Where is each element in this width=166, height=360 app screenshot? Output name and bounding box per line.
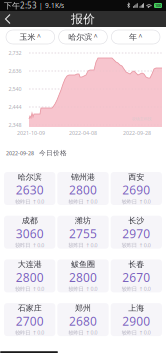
staticText: 2700 bbox=[16, 313, 44, 329]
staticText: 3060 bbox=[16, 226, 44, 241]
button[interactable]: 年 bbox=[111, 30, 160, 44]
button[interactable]: 石家庄 bbox=[4, 303, 55, 336]
staticText: 2022-09-28 bbox=[123, 129, 151, 137]
staticText: 西安 bbox=[128, 172, 144, 182]
staticText: 长沙 bbox=[128, 216, 144, 226]
staticText: 哈尔滨 bbox=[18, 172, 42, 182]
staticText: 2,348 bbox=[8, 121, 21, 129]
staticText: 长春 bbox=[128, 259, 144, 269]
staticText: 2970 bbox=[122, 226, 150, 241]
staticText: 较昨日 ↑ 0.0 bbox=[122, 329, 151, 336]
staticText: 较昨日 ↑ 0.0 bbox=[15, 329, 44, 336]
button[interactable]: 鲅鱼圈 bbox=[57, 259, 109, 292]
staticText: ^ bbox=[138, 33, 142, 41]
staticText: 2800 bbox=[69, 182, 97, 198]
staticText: 2022-04-08 bbox=[69, 129, 97, 137]
staticText: 下午2:53 bbox=[4, 0, 37, 11]
staticText: 2800 bbox=[16, 269, 44, 285]
button[interactable]: 长沙 bbox=[111, 216, 162, 249]
button[interactable]: 哈尔滨 bbox=[4, 172, 55, 205]
staticText: 较昨日 ↑ 0.0 bbox=[122, 198, 151, 205]
button[interactable]: 西安 bbox=[111, 172, 162, 205]
button[interactable]: 大连港 bbox=[4, 259, 55, 292]
staticText: 2755 bbox=[69, 226, 97, 241]
staticText: 2800 bbox=[69, 269, 97, 285]
button[interactable]: 锦州港 bbox=[57, 172, 109, 205]
staticText: 2680 bbox=[69, 313, 97, 329]
staticText: 报价 bbox=[71, 12, 95, 26]
staticText: 年 bbox=[129, 32, 137, 42]
staticText: 较昨日 ↑ 0.0 bbox=[68, 329, 97, 336]
staticText: ^ bbox=[37, 33, 41, 41]
staticText: 2,540 bbox=[8, 85, 21, 93]
staticText: 大连港 bbox=[18, 259, 42, 269]
staticText: 2,636 bbox=[8, 67, 21, 75]
button[interactable]: 长春 bbox=[111, 259, 162, 292]
button[interactable]: 郑州 bbox=[57, 303, 109, 336]
staticText: 较昨日 ↑ 0.0 bbox=[15, 285, 44, 292]
staticText: 2900 bbox=[122, 313, 150, 329]
staticText: 潍坊 bbox=[75, 216, 91, 226]
button[interactable]: 哈尔滨 bbox=[59, 30, 107, 44]
staticText: 2690 bbox=[122, 182, 150, 198]
staticText: 较昨日 ↑ 0.0 bbox=[15, 198, 44, 205]
staticText: 今日价格 bbox=[39, 149, 67, 157]
staticText: 较昨日 ↑ 0.0 bbox=[122, 241, 151, 249]
staticText: 2022-09-28 bbox=[6, 150, 34, 157]
staticText: 较昨日 ↑ 0.0 bbox=[122, 285, 151, 292]
staticText: 石家庄 bbox=[18, 303, 42, 313]
staticText: 2,732 bbox=[8, 49, 21, 57]
staticText: 上海 bbox=[128, 303, 144, 313]
staticText: 哈尔滨 bbox=[68, 32, 92, 42]
button[interactable]: 玉米 bbox=[6, 30, 55, 44]
staticText: 较昨日 ↑ 0.0 bbox=[15, 241, 44, 249]
button[interactable]: 上海 bbox=[111, 303, 162, 336]
staticText: 较昨日 ↑ 0.0 bbox=[68, 241, 97, 249]
staticText: 2021-10-09 bbox=[17, 129, 45, 137]
staticText: 较昨日 ↑ 0.0 bbox=[68, 198, 97, 205]
staticText: 成都 bbox=[22, 216, 38, 226]
staticText: 较昨日 ↑ 0.0 bbox=[68, 285, 97, 292]
staticText: 2,444 bbox=[8, 103, 21, 111]
staticText: ^ bbox=[94, 33, 98, 41]
button[interactable]: Back bbox=[0, 11, 22, 27]
staticText: 2670 bbox=[122, 269, 150, 285]
staticText: 100 bbox=[155, 3, 161, 8]
staticText: 2630 bbox=[16, 182, 44, 198]
staticText: 农场主科技 bbox=[132, 116, 152, 121]
staticText: | 9.1K/s bbox=[37, 1, 64, 10]
staticText: 郑州 bbox=[75, 303, 91, 313]
staticText: 玉米 bbox=[20, 32, 36, 42]
staticText: 锦州港 bbox=[71, 172, 95, 182]
button[interactable]: 成都 bbox=[4, 216, 55, 249]
button[interactable]: 潍坊 bbox=[57, 216, 109, 249]
staticText: 鲅鱼圈 bbox=[71, 259, 95, 269]
